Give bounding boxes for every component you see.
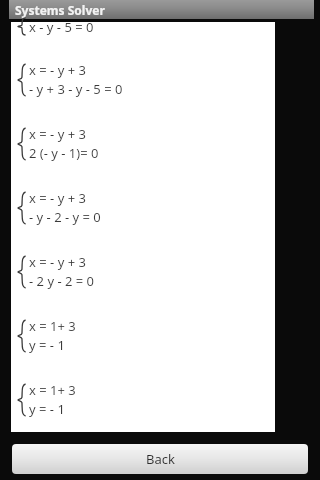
staticText: - y + 3 - y - 5 = 0: [29, 80, 123, 98]
staticText: x = - y + 3: [29, 253, 86, 271]
staticText: x = - y + 3: [29, 61, 86, 79]
staticText: y = - 1: [29, 400, 65, 418]
staticText: Systems Solver: [15, 2, 105, 18]
button[interactable]: Back: [12, 444, 308, 474]
staticText: x = - y + 3: [29, 189, 86, 207]
staticText: y = - 1: [29, 336, 65, 354]
staticText: x = - y + 3: [29, 125, 86, 143]
staticText: Back: [146, 450, 175, 468]
staticText: x - y - 5 = 0: [29, 18, 94, 36]
staticText: x = 1+ 3: [29, 317, 76, 335]
staticText: x = 1+ 3: [29, 381, 76, 399]
staticText: - 2 y - 2 = 0: [29, 272, 95, 290]
staticText: 2 (- y - 1)= 0: [29, 144, 99, 162]
staticText: - y - 2 - y = 0: [29, 208, 101, 226]
